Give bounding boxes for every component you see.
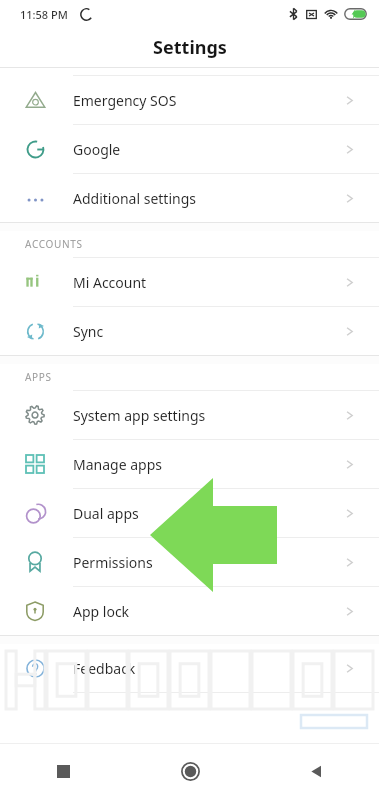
button[interactable]: Home — [127, 743, 253, 800]
staticText: Permissions — [73, 553, 347, 572]
button[interactable]: Feedback — [0, 644, 379, 692]
staticText: App lock — [73, 602, 347, 621]
button[interactable]: Back — [253, 743, 379, 800]
staticText: Additional settings — [73, 189, 347, 208]
staticText: Settings — [153, 35, 227, 60]
button[interactable]: Google — [0, 125, 379, 173]
button[interactable]: Emergency SOS — [0, 76, 379, 124]
button[interactable]: Dual apps — [0, 489, 379, 537]
staticText: Google — [73, 140, 347, 159]
staticText: Manage apps — [73, 455, 347, 474]
button[interactable]: Manage apps — [0, 440, 379, 488]
button[interactable]: Recent apps — [0, 743, 127, 800]
button[interactable]: Additional settings — [0, 174, 379, 222]
staticText: Mi Account — [73, 273, 347, 292]
staticText: 11:58 PM — [20, 7, 68, 22]
staticText: Feedback — [73, 659, 347, 678]
button[interactable]: Permissions — [0, 538, 379, 586]
staticText: ACCOUNTS — [25, 237, 83, 251]
button[interactable]: System app settings — [0, 391, 379, 439]
button[interactable]: App lock — [0, 587, 379, 635]
staticText: System app settings — [73, 406, 347, 425]
button[interactable]: Mi Account — [0, 258, 379, 306]
button[interactable]: Sync — [0, 307, 379, 355]
staticText: APPS — [25, 370, 52, 384]
staticText: Emergency SOS — [73, 91, 347, 110]
staticText: Sync — [73, 322, 347, 341]
staticText: Dual apps — [73, 504, 347, 523]
